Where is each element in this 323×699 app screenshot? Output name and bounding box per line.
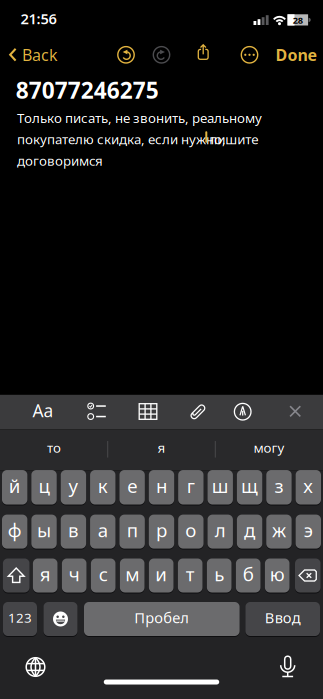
button[interactable]: в	[61, 515, 86, 549]
button[interactable]: могу	[219, 432, 319, 466]
staticText: щ	[241, 473, 258, 498]
staticText: о	[185, 518, 196, 542]
staticText: Aa	[32, 399, 53, 422]
button[interactable]: ш	[207, 470, 233, 505]
button[interactable]: Shift	[3, 558, 29, 592]
button[interactable]: Table	[138, 403, 157, 420]
button[interactable]: т	[178, 558, 202, 592]
staticText: ф	[8, 518, 22, 542]
staticText: ь	[214, 562, 224, 586]
button[interactable]: п	[119, 515, 145, 549]
staticText: б	[243, 562, 254, 586]
button[interactable]: х	[296, 470, 321, 505]
staticText: й	[9, 473, 21, 498]
staticText: л	[215, 518, 226, 542]
staticText: а	[98, 518, 108, 542]
button[interactable]: Redo	[151, 45, 171, 65]
staticText: р	[156, 518, 167, 542]
button[interactable]: Пробел	[84, 602, 240, 636]
staticText: ц	[38, 473, 49, 498]
button[interactable]: э	[296, 515, 321, 549]
staticText: м	[125, 562, 139, 586]
staticText: з	[274, 473, 283, 498]
button[interactable]: то	[4, 432, 104, 466]
staticText: 28	[293, 14, 303, 26]
button[interactable]: с	[91, 558, 115, 592]
button[interactable]: Format	[32, 399, 53, 422]
button[interactable]: ы	[31, 515, 57, 549]
button[interactable]: и	[149, 558, 173, 592]
staticText: Done	[275, 44, 317, 65]
staticText: пишите	[209, 130, 258, 148]
button[interactable]: д	[237, 515, 262, 549]
button[interactable]: Ввод	[245, 602, 320, 636]
button[interactable]: Dismiss keyboard	[289, 405, 301, 417]
button[interactable]: я	[33, 558, 57, 592]
button[interactable]: ь	[207, 558, 231, 592]
button[interactable]: щ	[237, 470, 262, 505]
staticText: и	[155, 562, 167, 586]
staticText: э	[304, 518, 313, 542]
button[interactable]: ц	[31, 470, 57, 505]
staticText: е	[127, 473, 137, 498]
button[interactable]: Attach	[190, 402, 205, 422]
staticText: Ввод	[265, 608, 301, 627]
button[interactable]: More	[239, 45, 259, 65]
staticText: с	[99, 562, 108, 586]
button[interactable]: Markup	[234, 403, 252, 421]
button[interactable]: 123	[3, 602, 37, 636]
button[interactable]: м	[120, 558, 144, 592]
staticText: х	[303, 473, 313, 498]
button[interactable]: з	[266, 470, 292, 505]
button[interactable]: е	[119, 470, 145, 505]
staticText: покупателю скидка, если нужно,	[17, 130, 226, 148]
button[interactable]: Back	[9, 44, 58, 65]
staticText: ы	[37, 518, 51, 542]
staticText: то	[47, 439, 61, 456]
button[interactable]: Next keyboard	[25, 657, 45, 677]
button[interactable]: ж	[266, 515, 292, 549]
staticText: н	[156, 473, 167, 498]
button[interactable]: н	[149, 470, 174, 505]
button[interactable]: л	[207, 515, 233, 549]
button[interactable]: г	[178, 470, 204, 505]
staticText: я	[157, 439, 165, 456]
staticText: ж	[272, 518, 286, 542]
button[interactable]: Emoji	[43, 602, 77, 636]
button[interactable]: Undo	[116, 45, 136, 65]
staticText: т	[186, 562, 195, 586]
button[interactable]: Checklist	[87, 402, 106, 421]
staticText: могу	[253, 439, 284, 456]
staticText: я	[40, 562, 51, 586]
staticText: договоримся	[17, 152, 103, 169]
staticText: в	[68, 518, 79, 542]
button[interactable]: Share	[197, 44, 209, 60]
staticText: 87077246275	[16, 75, 159, 105]
staticText: п	[127, 518, 138, 542]
button[interactable]: ч	[62, 558, 86, 592]
button[interactable]: б	[236, 558, 260, 592]
staticText: 21:56	[20, 9, 56, 28]
staticText: д	[244, 518, 255, 542]
button[interactable]: к	[90, 470, 115, 505]
staticText: к	[98, 473, 108, 498]
button[interactable]: Dictate	[280, 656, 295, 677]
button[interactable]: р	[149, 515, 174, 549]
staticText: Back	[22, 44, 58, 65]
button[interactable]: ю	[265, 558, 289, 592]
button[interactable]: а	[90, 515, 115, 549]
button[interactable]: Delete	[295, 558, 321, 592]
button[interactable]: о	[178, 515, 204, 549]
button[interactable]: я	[111, 432, 211, 466]
staticText: ч	[69, 562, 80, 586]
button[interactable]: й	[2, 470, 27, 505]
staticText: у	[68, 473, 78, 498]
button[interactable]: ф	[2, 515, 27, 549]
staticText: 123	[8, 609, 32, 626]
button[interactable]: Done	[275, 44, 317, 65]
staticText: ю	[270, 562, 285, 586]
staticText: Только писать, не звонить, реальному	[17, 109, 262, 127]
staticText: Пробел	[134, 608, 189, 627]
staticText: г	[187, 473, 195, 498]
button[interactable]: у	[61, 470, 86, 505]
